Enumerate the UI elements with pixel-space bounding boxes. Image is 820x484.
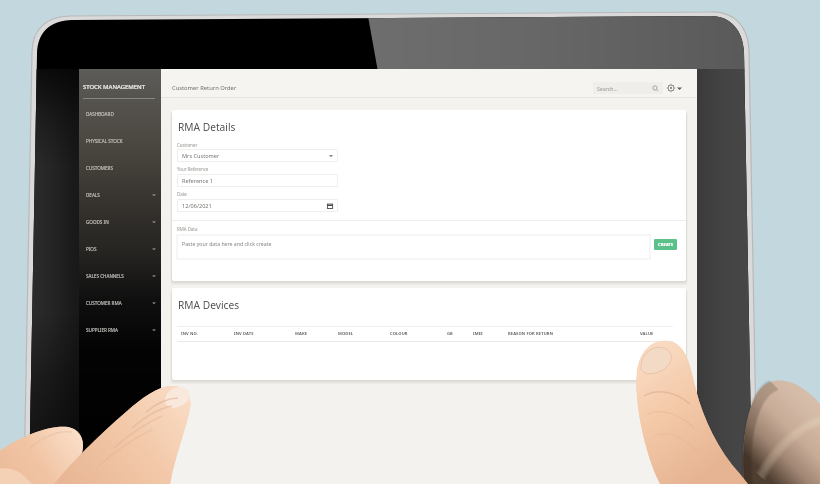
staticText: RMA Data: [177, 226, 198, 232]
button[interactable]: CUSTOMER RMA: [79, 289, 161, 316]
staticText: Your Reference: [177, 166, 209, 172]
button[interactable]: Reference 1: [177, 174, 338, 187]
button[interactable]: CREATE: [654, 239, 677, 250]
staticText: GOODS IN: [86, 219, 109, 225]
staticText: CUSTOMER RMA: [86, 300, 122, 306]
button[interactable]: PIOS: [79, 235, 161, 262]
staticText: Reference 1: [182, 177, 214, 185]
staticText: RMA Devices: [178, 298, 240, 312]
staticText: SUPPLIER RMA: [86, 327, 118, 333]
staticText: RMA Details: [178, 120, 236, 134]
button[interactable]: Settings: [666, 83, 676, 93]
button[interactable]: DEALS: [79, 181, 161, 208]
staticText: DASHBOARD: [86, 111, 114, 117]
staticText: Paste your data here and click create: [182, 240, 272, 247]
button[interactable]: Search...: [593, 82, 663, 94]
other: Search: [652, 85, 659, 92]
staticText: REASON FOR RETURN: [508, 331, 554, 337]
staticText: GB: [447, 331, 453, 337]
staticText: PIOS: [86, 246, 97, 252]
staticText: VALUE: [640, 331, 654, 337]
staticText: INV DATE: [234, 331, 254, 337]
staticText: SALES CHANNELS: [86, 273, 124, 279]
staticText: COLOUR: [390, 331, 408, 337]
staticText: Customer: [177, 142, 198, 148]
button[interactable]: Mrs Customer: [177, 149, 338, 162]
button[interactable]: CUSTOMERS: [79, 154, 161, 181]
button[interactable]: GOODS IN: [79, 208, 161, 235]
staticText: 12/06/2021: [182, 202, 212, 210]
staticText: CUSTOMERS: [86, 165, 113, 171]
staticText: CREATE: [658, 242, 674, 247]
staticText: Date: [177, 191, 187, 197]
staticText: MAKE: [295, 331, 308, 337]
staticText: Customer Return Order: [172, 84, 237, 92]
staticText: Mrs Customer: [182, 152, 220, 160]
staticText: STOCK MANAGEMENT: [83, 83, 145, 91]
button[interactable]: SUPPLIER RMA: [79, 316, 161, 343]
button[interactable]: PHYSICAL STOCK: [79, 127, 161, 154]
button[interactable]: SALES CHANNELS: [79, 262, 161, 289]
staticText: PHYSICAL STOCK: [86, 138, 123, 144]
staticText: Search...: [597, 85, 618, 92]
button[interactable]: Paste your data here and click create: [177, 235, 650, 259]
staticText: DEALS: [86, 192, 100, 198]
button[interactable]: DASHBOARD: [79, 100, 161, 127]
staticText: IMEI: [473, 331, 483, 337]
button[interactable]: More options: [677, 86, 682, 91]
staticText: INV NO.: [181, 331, 198, 337]
button[interactable]: 12/06/2021: [177, 199, 338, 212]
staticText: MODEL: [338, 331, 354, 337]
